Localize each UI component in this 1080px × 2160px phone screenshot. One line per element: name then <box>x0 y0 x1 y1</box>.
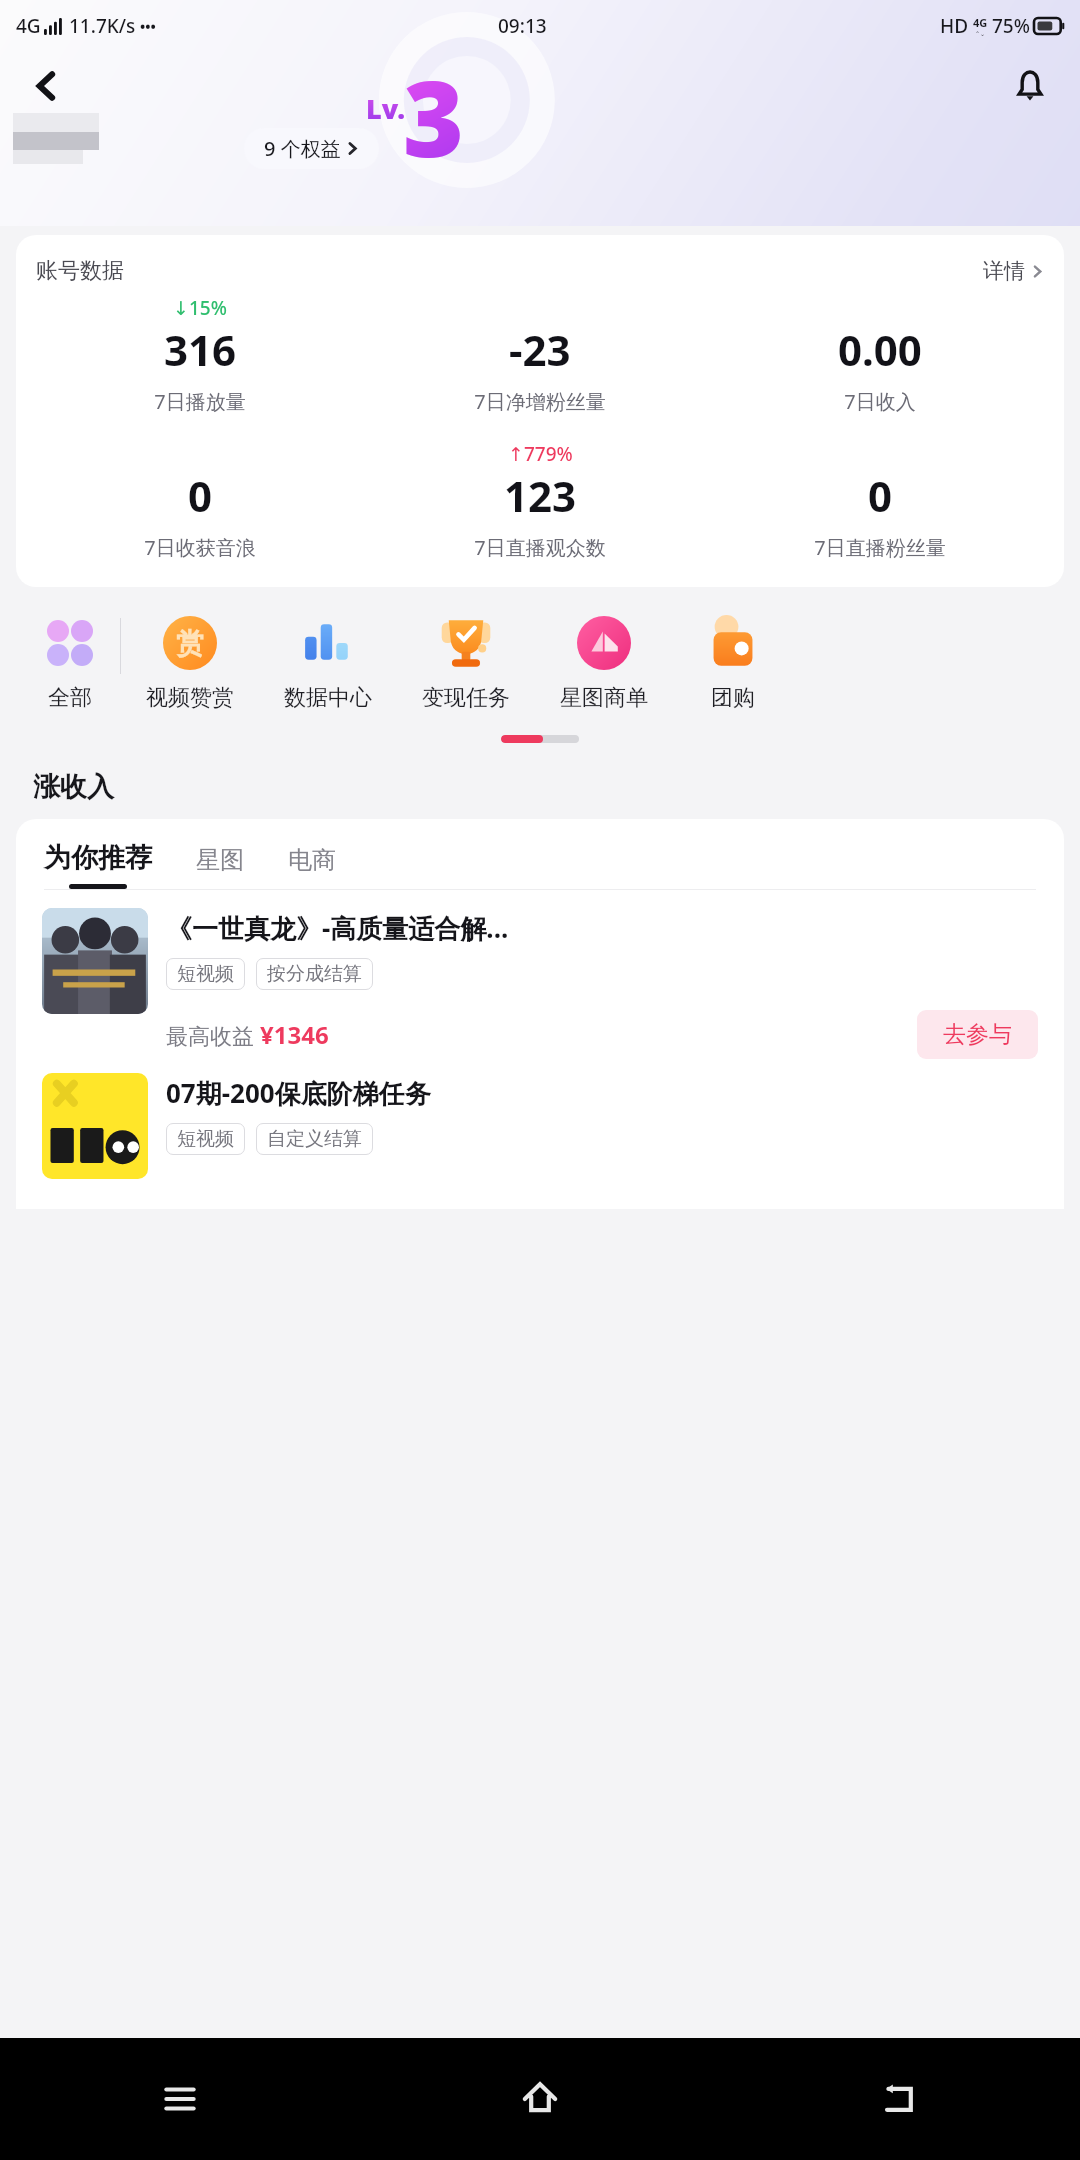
button[interactable]: ↑779% <box>370 441 710 561</box>
button[interactable]: Home <box>360 2038 720 2160</box>
staticText: 自定义结算 <box>267 1127 362 1151</box>
button[interactable]: -23 <box>370 295 710 415</box>
button[interactable]: 数据中心 <box>259 608 397 712</box>
staticText: 7日直播观众数 <box>474 534 606 561</box>
staticText: 电商 <box>288 845 336 875</box>
staticText: 0 <box>188 467 213 524</box>
button[interactable]: 全部 <box>20 608 120 712</box>
staticText: 数据中心 <box>284 684 372 712</box>
staticText: 视频赞赏 <box>146 684 234 712</box>
button[interactable]: 账号数据 <box>30 257 1050 285</box>
staticText: 7日收入 <box>844 388 916 415</box>
staticText: 赏 <box>176 626 204 661</box>
button[interactable]: 变现任务 <box>397 608 535 712</box>
staticText: 316 <box>164 321 237 378</box>
staticText: HD <box>940 13 969 39</box>
staticText: ↑779% <box>508 441 573 467</box>
button[interactable]: 星图 <box>196 845 244 889</box>
staticText: 短视频 <box>177 1127 234 1151</box>
staticText: 4G <box>16 13 41 39</box>
button[interactable]: 0.00 <box>710 295 1050 415</box>
staticText: 涨收入 <box>33 770 114 804</box>
button[interactable]: 去参与 <box>917 1010 1038 1059</box>
button[interactable]: 电商 <box>288 845 336 889</box>
staticText: 详情 <box>983 258 1025 284</box>
staticText: ¥1346 <box>260 1018 329 1051</box>
staticText: 7日播放量 <box>154 388 246 415</box>
staticText: ⌃⌄ <box>975 30 986 37</box>
staticText: 3 <box>403 46 464 188</box>
button[interactable]: Back <box>720 2038 1080 2160</box>
staticText: 07期-200保底阶梯任务 <box>166 1075 431 1111</box>
button[interactable]: Back <box>18 58 74 114</box>
staticText: ••• <box>140 17 156 36</box>
staticText: -23 <box>509 321 571 378</box>
staticText: Lv. <box>366 90 405 127</box>
staticText: ↓15% <box>173 295 227 321</box>
button[interactable]: ↓15% <box>30 295 370 415</box>
button[interactable]: 星图商单 <box>535 608 673 712</box>
staticText: 星图商单 <box>560 684 648 712</box>
button[interactable]: 07期-200保底阶梯任务 <box>16 1073 1064 1179</box>
staticText: 账号数据 <box>36 257 124 285</box>
staticText: 变现任务 <box>422 684 510 712</box>
staticText: 团购 <box>711 684 755 712</box>
staticText: 星图 <box>196 845 244 875</box>
staticText: 7日直播粉丝量 <box>814 534 946 561</box>
staticText: 75% <box>992 13 1030 39</box>
staticText: 为你推荐 <box>44 841 152 875</box>
staticText: 《一世真龙》-高质量适合解... <box>166 910 509 946</box>
button[interactable]: 9 个权益 <box>244 128 379 169</box>
staticText: 11.7K/s <box>69 13 136 39</box>
staticText: 09:13 <box>498 13 547 39</box>
button[interactable]: 0 <box>30 441 370 561</box>
staticText: 9 个权益 <box>264 135 341 162</box>
staticText: 7日净增粉丝量 <box>474 388 606 415</box>
button[interactable]: 团购 <box>673 608 793 712</box>
staticText: 7日收获音浪 <box>144 534 256 561</box>
staticText: 0 <box>868 467 893 524</box>
button[interactable]: 赏 <box>121 608 259 712</box>
button[interactable]: 0 <box>710 441 1050 561</box>
button[interactable]: Notifications <box>1000 56 1060 116</box>
staticText: 全部 <box>48 684 92 712</box>
staticText: 去参与 <box>943 1020 1012 1049</box>
staticText: 最高收益 <box>166 1020 260 1050</box>
staticText: 0.00 <box>838 321 922 378</box>
staticText: 123 <box>504 467 577 524</box>
button[interactable]: 为你推荐 <box>44 841 152 889</box>
button[interactable]: 《一世真龙》-高质量适合解... <box>16 908 1064 1059</box>
staticText: 按分成结算 <box>267 962 362 986</box>
button[interactable]: Recent apps <box>0 2038 360 2160</box>
staticText: 短视频 <box>177 962 234 986</box>
staticText: 4G <box>973 15 988 30</box>
